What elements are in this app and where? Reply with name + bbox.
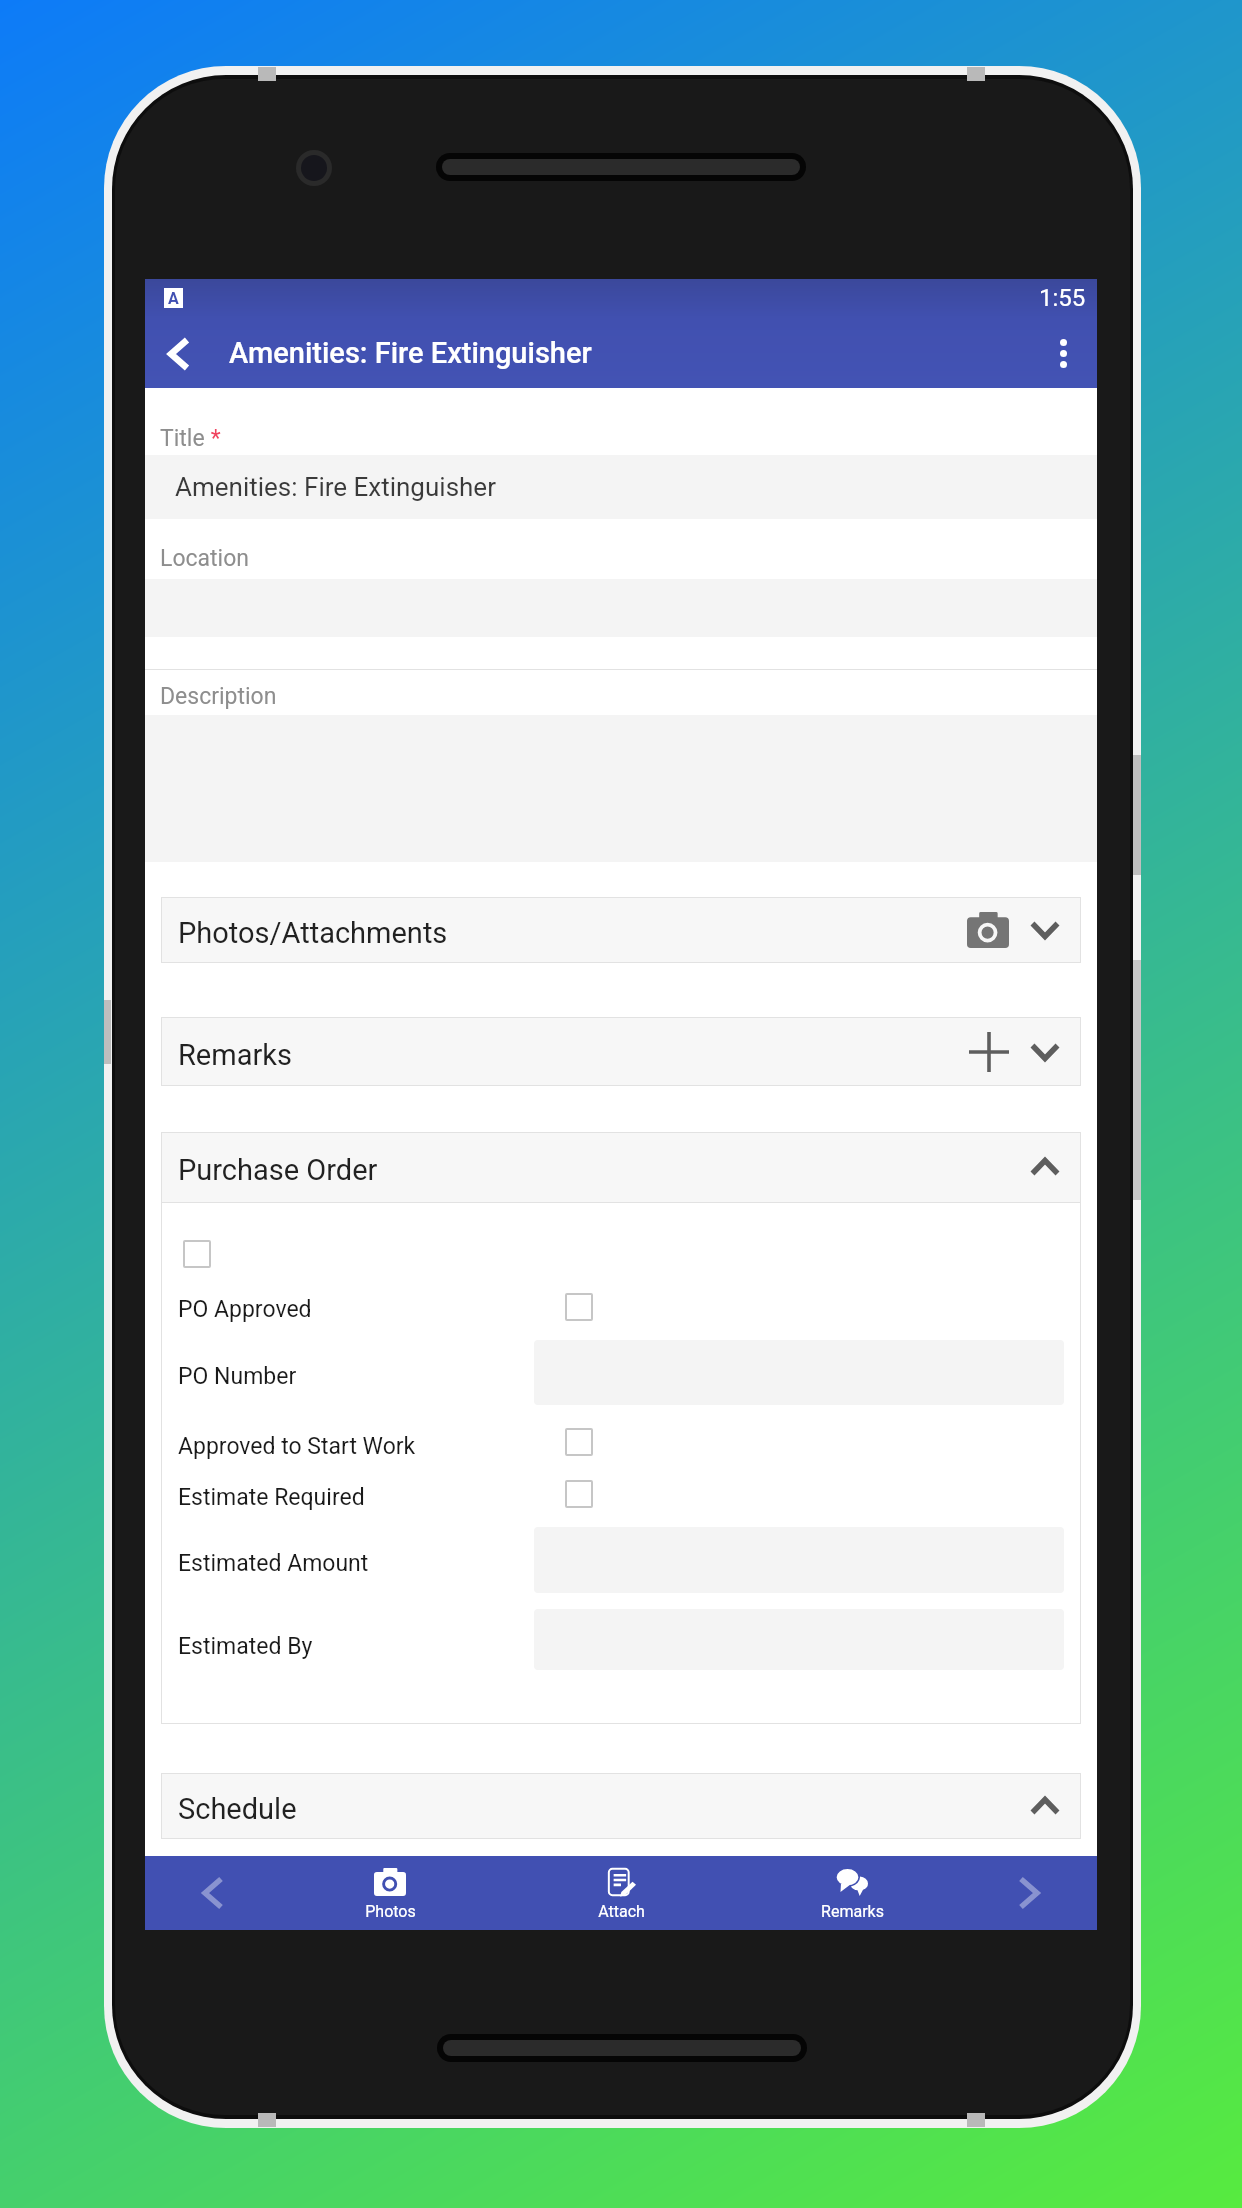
staticText: PO Approved — [178, 1296, 312, 1323]
button[interactable]: Photos/Attachments — [161, 897, 1081, 963]
staticText: 1:55 — [1039, 284, 1086, 312]
staticText: Schedule — [178, 1792, 297, 1826]
button[interactable]: Next — [996, 1856, 1062, 1930]
staticText: Description — [160, 683, 277, 710]
button[interactable]: Remarks — [792, 1856, 912, 1930]
staticText: A — [168, 289, 179, 308]
staticText: Remarks — [178, 1038, 292, 1072]
staticText: Amenities: Fire Extinguisher — [175, 472, 496, 502]
staticText: Amenities: Fire Extinguisher — [229, 336, 592, 370]
staticText: Attach — [598, 1902, 645, 1921]
staticText: Remarks — [821, 1902, 884, 1921]
button[interactable]: More options — [1029, 319, 1097, 388]
staticText: Estimate Required — [178, 1484, 365, 1511]
button[interactable]: Photos — [330, 1856, 450, 1930]
button[interactable]: Checkbox — [183, 1240, 211, 1268]
staticText: PO Number — [178, 1363, 297, 1390]
staticText: Approved to Start Work — [178, 1433, 416, 1460]
button[interactable]: Checkbox — [565, 1293, 593, 1321]
staticText: Purchase Order — [178, 1153, 378, 1187]
button[interactable]: Checkbox — [565, 1428, 593, 1456]
button[interactable]: Checkbox — [565, 1480, 593, 1508]
button[interactable]: Amenities: Fire Extinguisher — [145, 455, 1097, 519]
staticText: Estimated By — [178, 1633, 313, 1660]
staticText: Photos/Attachments — [178, 916, 448, 950]
button[interactable]: Purchase Order — [161, 1132, 1081, 1202]
staticText: Estimated Amount — [178, 1550, 369, 1577]
staticText: Location — [160, 545, 249, 572]
button[interactable]: Schedule — [161, 1773, 1081, 1839]
button[interactable]: Remarks — [161, 1017, 1081, 1086]
button[interactable]: Back — [145, 319, 213, 388]
button[interactable]: Previous — [180, 1856, 246, 1930]
button[interactable]: Attach — [561, 1856, 681, 1930]
staticText: Photos — [365, 1902, 416, 1921]
staticText: Title — [160, 425, 205, 452]
staticText: * — [205, 425, 221, 452]
